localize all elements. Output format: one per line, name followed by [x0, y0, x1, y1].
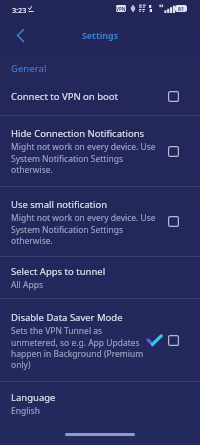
button[interactable]: Disable Data Saver Mode — [0, 299, 200, 381]
staticText: Select Apps to tunnel — [11, 265, 106, 278]
staticText: 81 — [178, 5, 185, 12]
button[interactable]: Connect to VPN on boot — [0, 78, 200, 115]
button[interactable]: Hide Connection Notifications — [0, 116, 200, 186]
button[interactable]: Toggle Disable Data Saver Mode — [168, 335, 179, 346]
button[interactable]: Toggle Use small notification — [168, 216, 179, 227]
staticText: General — [11, 62, 47, 75]
staticText: English — [11, 405, 40, 417]
staticText: All Apps — [11, 279, 43, 291]
button[interactable]: Toggle Hide Connection Notifications — [168, 146, 179, 157]
staticText: 3:23 — [12, 5, 27, 15]
staticText: VPN — [116, 6, 126, 12]
staticText: Language — [11, 391, 56, 404]
button[interactable]: Select Apps to tunnel — [0, 257, 200, 298]
button[interactable]: Back — [7, 22, 34, 49]
staticText: Use small notification — [11, 198, 108, 211]
button[interactable]: Language — [0, 382, 200, 426]
staticText: Might not work on every device. Use Syst… — [11, 141, 161, 175]
staticText: Connect to VPN on boot — [11, 90, 118, 103]
staticText: Settings — [82, 30, 119, 42]
button[interactable]: Toggle Connect to VPN on boot — [168, 91, 179, 102]
staticText: Hide Connection Notifications — [11, 127, 145, 140]
staticText: Sets the VPN Tunnel as unmetered, so e.g… — [11, 325, 146, 370]
button[interactable]: Use small notification — [0, 187, 200, 256]
staticText: Might not work on every device. Use Syst… — [11, 212, 161, 246]
staticText: Disable Data Saver Mode — [11, 311, 123, 324]
